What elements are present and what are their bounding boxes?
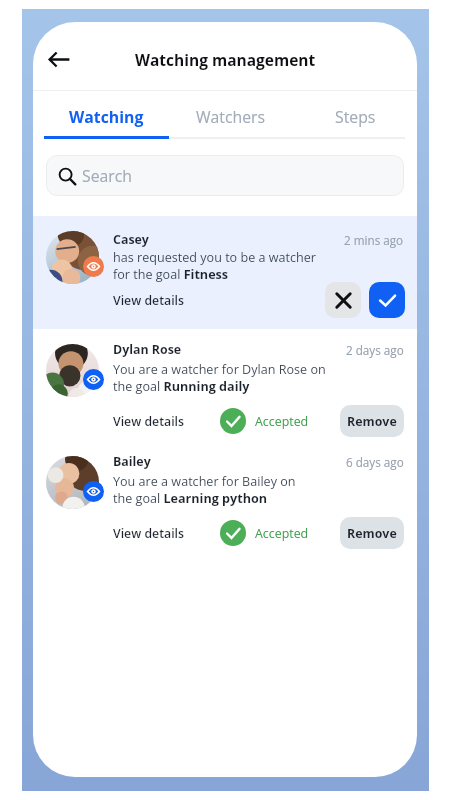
staticText: Remove [347, 525, 397, 542]
staticText: Accepted [255, 525, 309, 542]
staticText: Remove [347, 413, 397, 430]
button[interactable]: Remove [340, 405, 404, 437]
staticText: 2 mins ago [344, 232, 404, 248]
button[interactable]: Back [39, 39, 79, 79]
button[interactable]: Bailey [33, 438, 417, 550]
button[interactable]: View details [113, 413, 184, 430]
staticText: You are a watcher for Bailey on the goal… [113, 473, 296, 506]
button[interactable]: Casey [33, 216, 417, 329]
staticText: 6 days ago [346, 454, 404, 470]
button[interactable]: Decline request [325, 282, 361, 318]
staticText: 2 days ago [346, 342, 404, 358]
staticText: Dylan Rose [113, 341, 182, 358]
button[interactable]: Accept request [369, 282, 405, 318]
staticText: Casey [113, 231, 149, 248]
button[interactable]: View details [113, 292, 184, 309]
staticText: Accepted [255, 413, 309, 430]
button[interactable]: Remove [340, 517, 404, 549]
button[interactable]: View details [113, 525, 184, 542]
staticText: Search [82, 165, 133, 187]
staticText: Watching management [135, 49, 316, 70]
staticText: You are a watcher for Dylan Rose on the … [113, 361, 326, 394]
staticText: Watching [69, 106, 144, 128]
staticText: has requested you to be a watcher for th… [113, 249, 317, 282]
button[interactable]: Dylan Rose [33, 326, 417, 438]
staticText: Bailey [113, 453, 151, 470]
staticText: Watchers [196, 106, 266, 128]
staticText: Steps [335, 106, 376, 128]
button[interactable]: Watchers [169, 91, 293, 139]
button[interactable]: Watching [44, 91, 169, 139]
button[interactable]: Steps [293, 91, 417, 139]
button[interactable]: Search [46, 155, 404, 196]
